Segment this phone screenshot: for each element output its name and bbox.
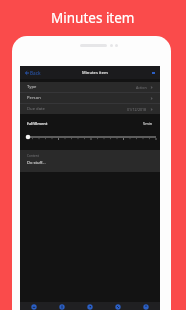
staticText: Type xyxy=(27,84,37,90)
staticText: Action xyxy=(136,85,147,90)
staticText: 01/12/2018 xyxy=(127,107,147,112)
button[interactable]: Profile xyxy=(132,302,160,310)
button[interactable]: Notes xyxy=(104,302,132,310)
staticText: Back xyxy=(30,70,41,76)
button[interactable]: Search xyxy=(48,302,76,310)
button[interactable]: Tasks xyxy=(76,302,104,310)
button[interactable]: Type xyxy=(20,82,160,92)
button[interactable]: Back xyxy=(20,68,45,78)
button[interactable]: More options xyxy=(147,69,160,77)
button[interactable]: Home xyxy=(20,302,48,310)
staticText: Due date xyxy=(27,106,45,112)
staticText: Person xyxy=(27,95,41,101)
staticText: Minutes item xyxy=(82,70,108,75)
staticText: 5min xyxy=(143,121,153,126)
button[interactable]: Due date xyxy=(20,104,160,114)
staticText: Content xyxy=(27,154,39,158)
staticText: Do stuff... xyxy=(27,160,46,166)
staticText: Minutes item xyxy=(51,9,135,27)
button[interactable]: Person xyxy=(20,93,160,103)
button[interactable]: Content xyxy=(20,150,160,172)
staticText: fulfillment xyxy=(27,121,48,126)
